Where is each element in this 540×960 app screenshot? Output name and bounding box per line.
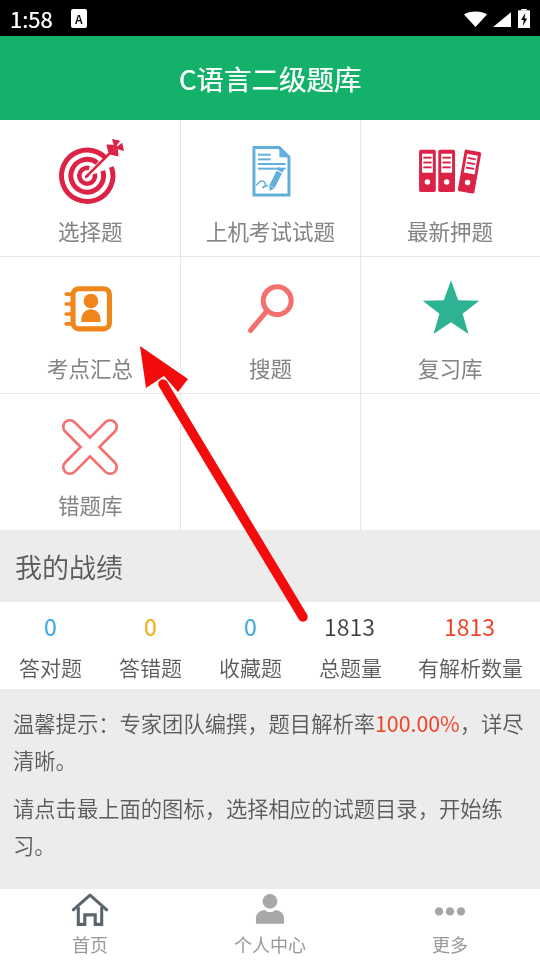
staticText: 有解析数量	[418, 652, 523, 682]
staticText: 1813	[324, 609, 376, 642]
button[interactable]: 上机考试试题	[181, 120, 360, 256]
staticText: 总题量	[319, 652, 382, 682]
staticText: 搜题	[249, 352, 293, 383]
button[interactable]: 更多	[360, 889, 540, 960]
button[interactable]: 选择题	[0, 120, 180, 256]
button[interactable]: 首页	[0, 889, 180, 960]
staticText: 请点击最上面的图标，选择相应的试题目录，开始练习。	[13, 792, 529, 861]
staticText: 复习库	[418, 352, 483, 383]
staticText: 0	[144, 609, 157, 642]
staticText: 答对题	[19, 652, 82, 682]
staticText: 个人中心	[234, 931, 306, 957]
staticText: C语言二级题库	[179, 58, 362, 98]
button[interactable]: 复习库	[361, 257, 540, 393]
staticText: 选择题	[58, 215, 123, 246]
staticText: 最新押题	[407, 215, 494, 246]
staticText: 0	[44, 609, 57, 642]
staticText: 首页	[72, 931, 108, 957]
staticText: 上机考试试题	[206, 215, 336, 246]
staticText: 答错题	[119, 652, 182, 682]
staticText: 收藏题	[219, 652, 282, 682]
staticText: 1:58	[10, 2, 53, 34]
staticText: 更多	[432, 931, 468, 957]
button[interactable]: 个人中心	[180, 889, 360, 960]
staticText: 1813	[444, 609, 496, 642]
staticText: 我的战绩	[15, 547, 123, 586]
staticText: 错题库	[58, 489, 123, 520]
button[interactable]: 错题库	[0, 394, 180, 530]
staticText: A	[75, 10, 83, 27]
button[interactable]: 最新押题	[361, 120, 540, 256]
staticText: 0	[244, 609, 257, 642]
staticText: 温馨提示：专家团队编撰，题目解析率100.00%，详尽清晰。	[13, 707, 529, 776]
staticText: 考点汇总	[47, 352, 134, 383]
button[interactable]: 考点汇总	[0, 257, 180, 393]
button[interactable]: 搜题	[181, 257, 360, 393]
